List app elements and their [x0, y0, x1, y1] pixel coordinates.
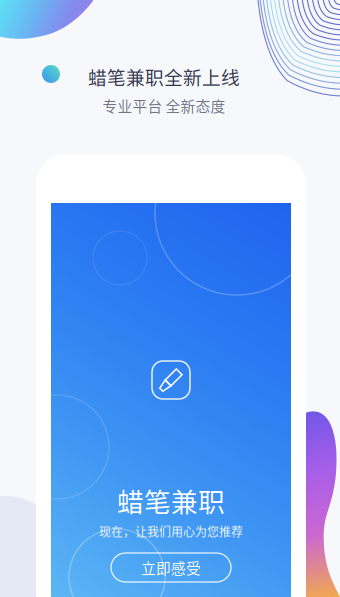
staticText: 蜡笔兼职全新上线 — [88, 63, 240, 90]
staticText: 蜡笔兼职 — [117, 481, 225, 520]
staticText: 立即感受 — [141, 557, 201, 578]
button[interactable]: 立即感受 — [111, 553, 231, 582]
staticText: 专业平台 全新态度 — [102, 95, 225, 116]
staticText: 现在，让我们用心为您推荐 — [99, 523, 243, 540]
